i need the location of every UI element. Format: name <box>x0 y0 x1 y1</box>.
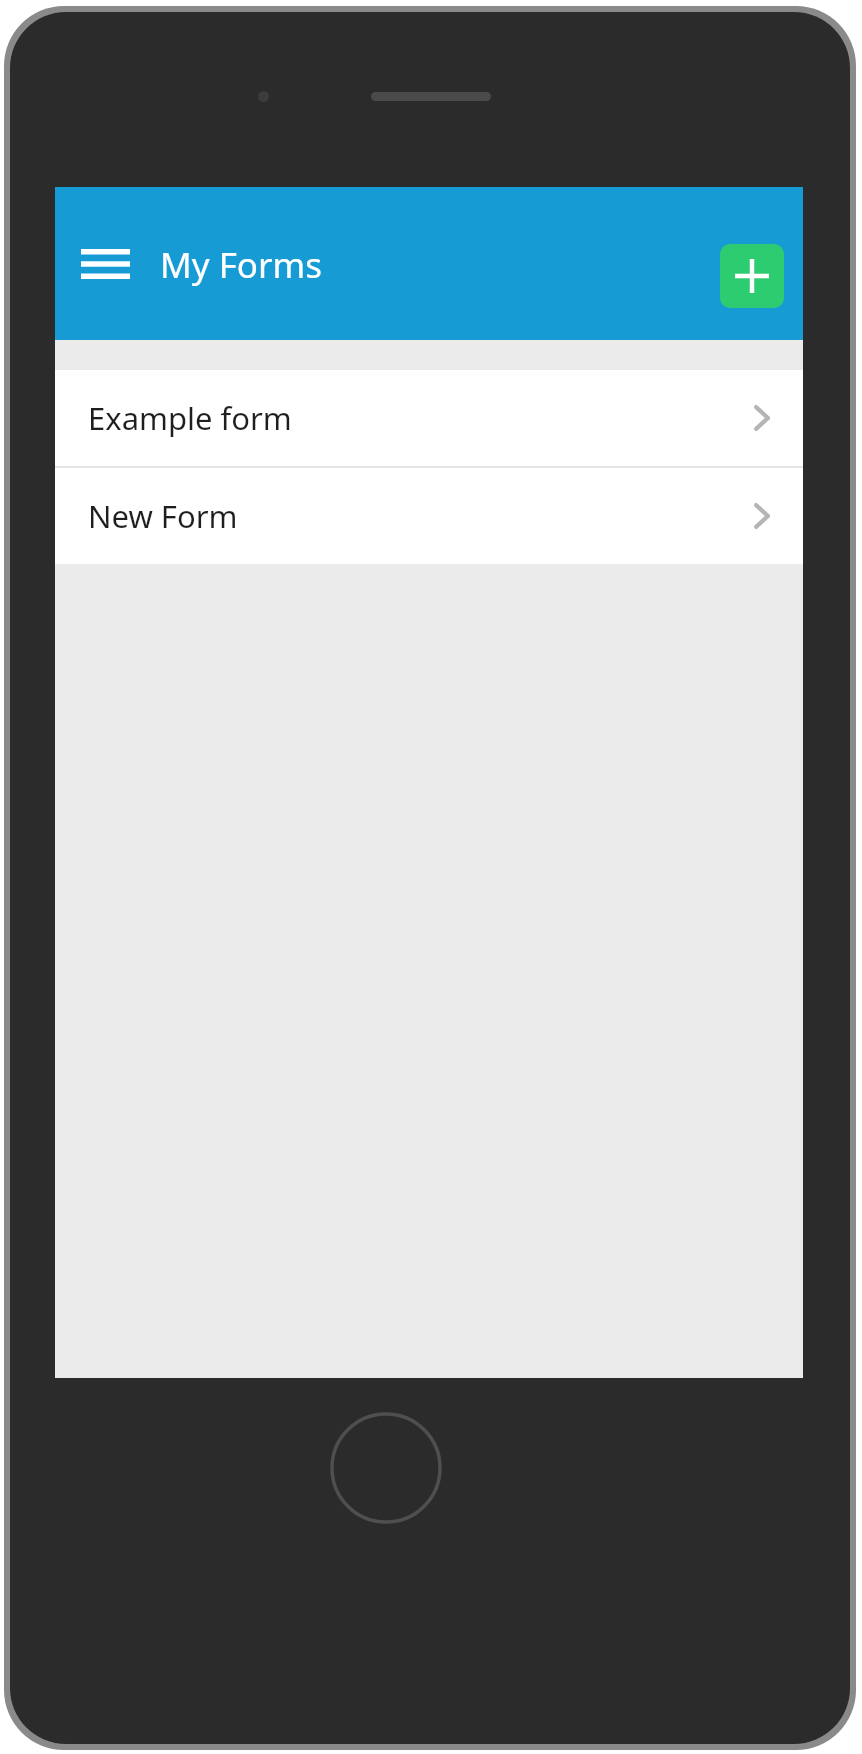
staticText: New Form <box>88 495 238 537</box>
button[interactable]: Add new form <box>720 244 784 308</box>
staticText: Example form <box>88 397 292 439</box>
button[interactable]: Open navigation menu <box>73 232 137 296</box>
button[interactable]: Example form <box>55 370 803 466</box>
button[interactable]: New Form <box>55 468 803 564</box>
staticText: My Forms <box>160 241 322 289</box>
